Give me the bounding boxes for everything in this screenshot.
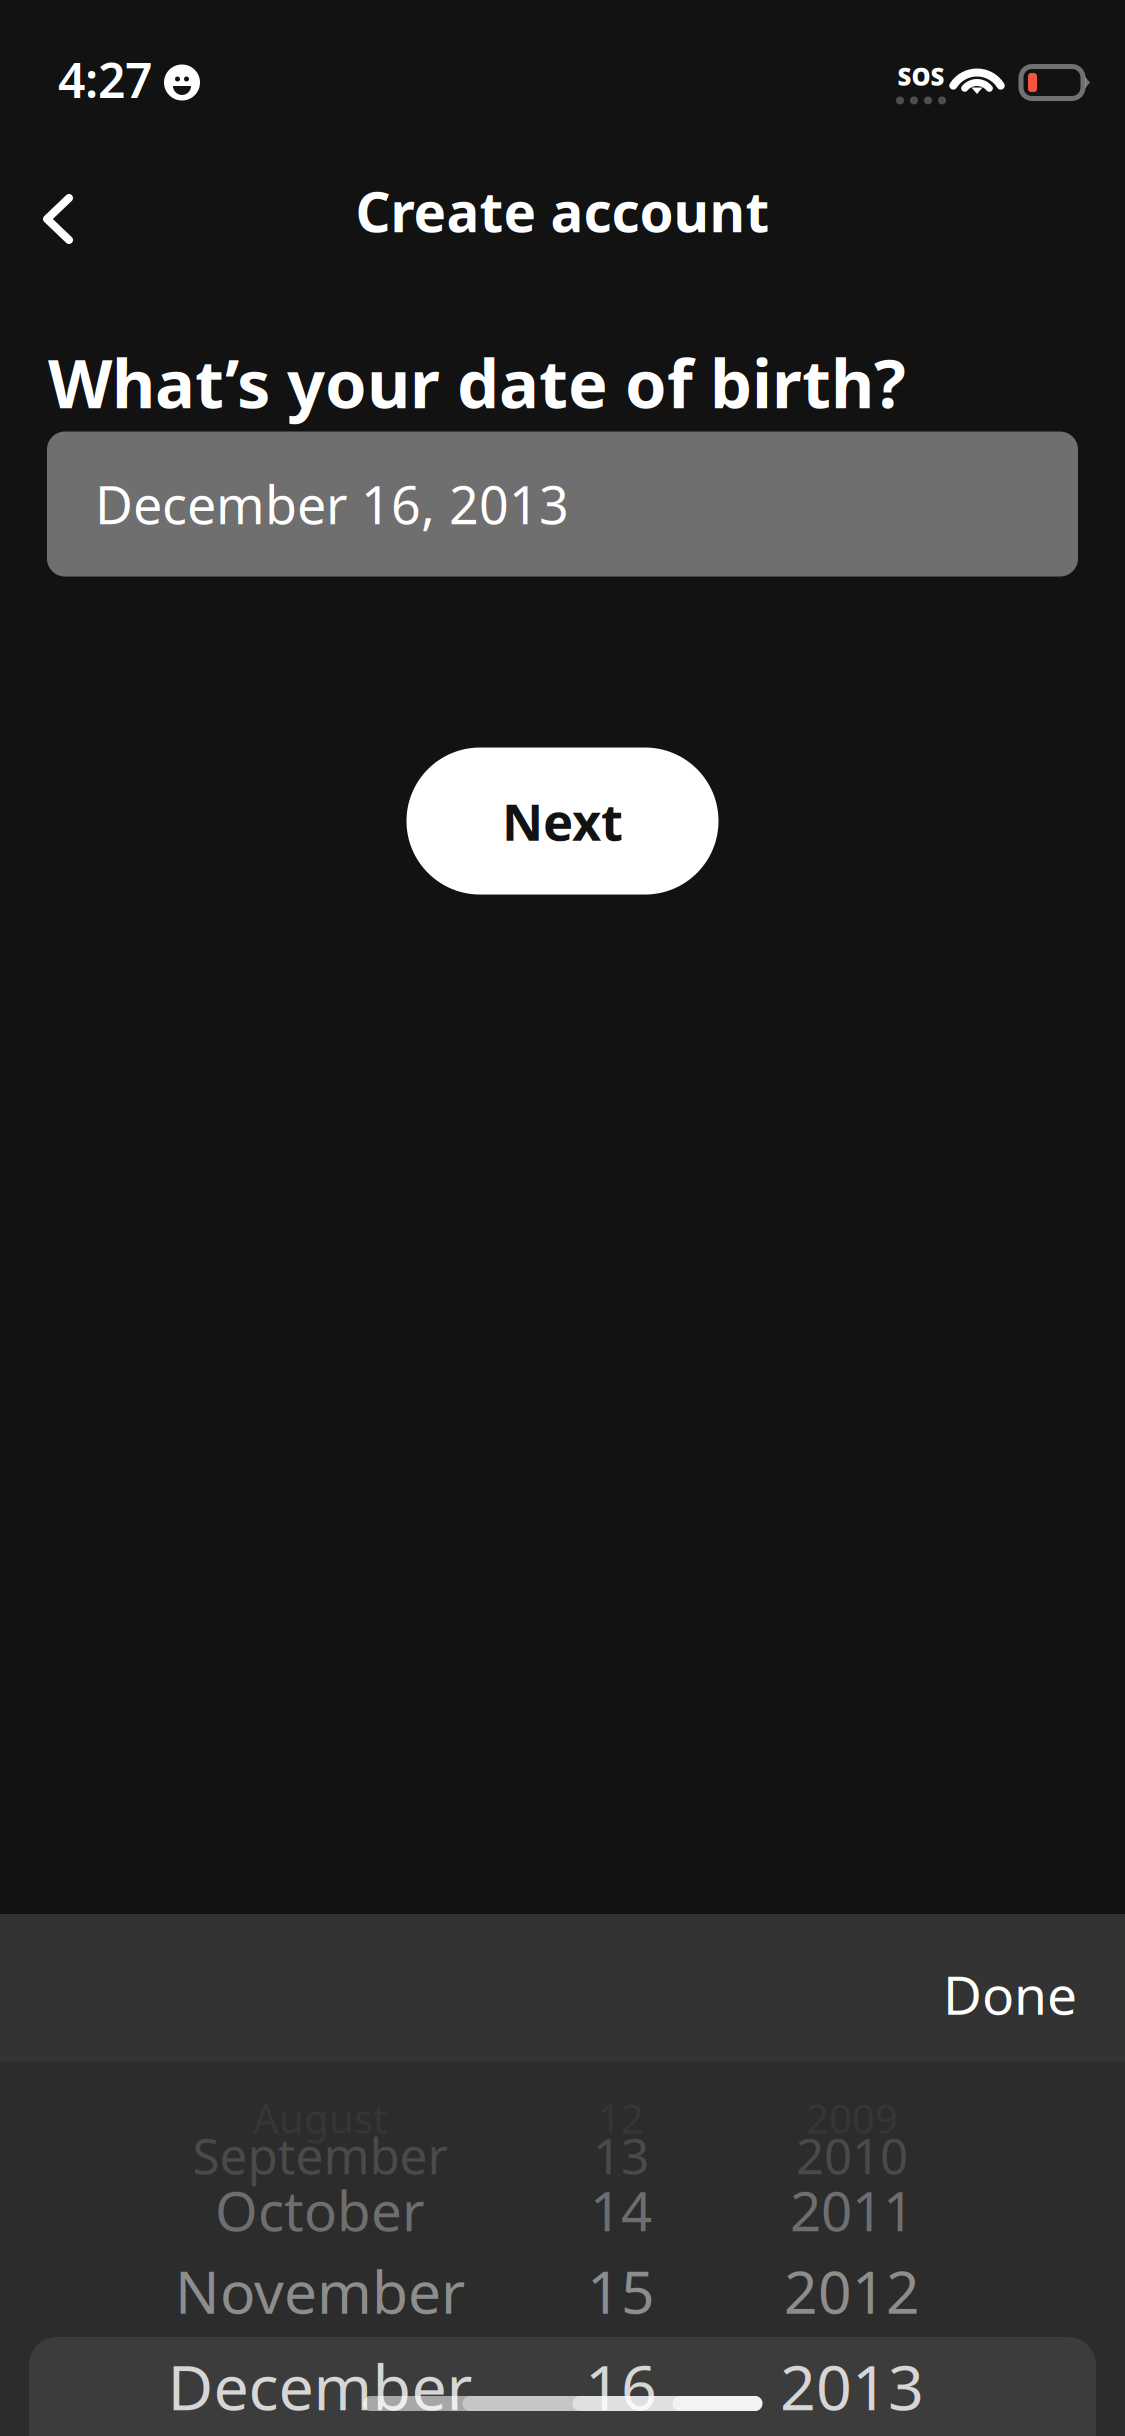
staticText: What’s your date of birth? bbox=[48, 338, 906, 426]
staticText: 2012 bbox=[784, 2252, 920, 2330]
button[interactable]: Done bbox=[943, 1914, 1125, 2062]
button[interactable]: Back bbox=[10, 171, 106, 267]
staticText: Create account bbox=[355, 175, 769, 247]
staticText: 14 bbox=[590, 2174, 652, 2246]
staticText: 15 bbox=[587, 2252, 655, 2330]
staticText: Done bbox=[943, 1959, 1077, 2029]
staticText: December 16, 2013 bbox=[95, 469, 569, 539]
staticText: 2011 bbox=[790, 2174, 914, 2246]
button[interactable]: Next bbox=[406, 747, 718, 894]
staticText: 12 bbox=[598, 2091, 644, 2144]
staticText: 13 bbox=[593, 2122, 649, 2188]
staticText: August bbox=[253, 2091, 387, 2144]
staticText: 2010 bbox=[796, 2122, 908, 2188]
staticText: October bbox=[215, 2174, 425, 2246]
staticText: 16 bbox=[585, 2344, 657, 2428]
staticText: 2013 bbox=[780, 2344, 924, 2428]
staticText: November bbox=[175, 2252, 465, 2330]
staticText: SOS bbox=[897, 61, 944, 92]
staticText: 2009 bbox=[806, 2091, 898, 2144]
staticText: Next bbox=[502, 787, 623, 855]
staticText: December bbox=[167, 2344, 472, 2428]
staticText: September bbox=[192, 2122, 447, 2188]
staticText: 4:27 bbox=[58, 48, 152, 111]
button[interactable]: December 16, 2013 bbox=[47, 431, 1078, 576]
